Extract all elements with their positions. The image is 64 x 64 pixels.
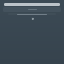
button[interactable]: Title	[4, 3, 60, 6]
button[interactable]: Main tile	[3, 7, 61, 12]
button[interactable]: Secondary row	[8, 13, 56, 15]
button[interactable]: Open settings	[31, 17, 34, 20]
